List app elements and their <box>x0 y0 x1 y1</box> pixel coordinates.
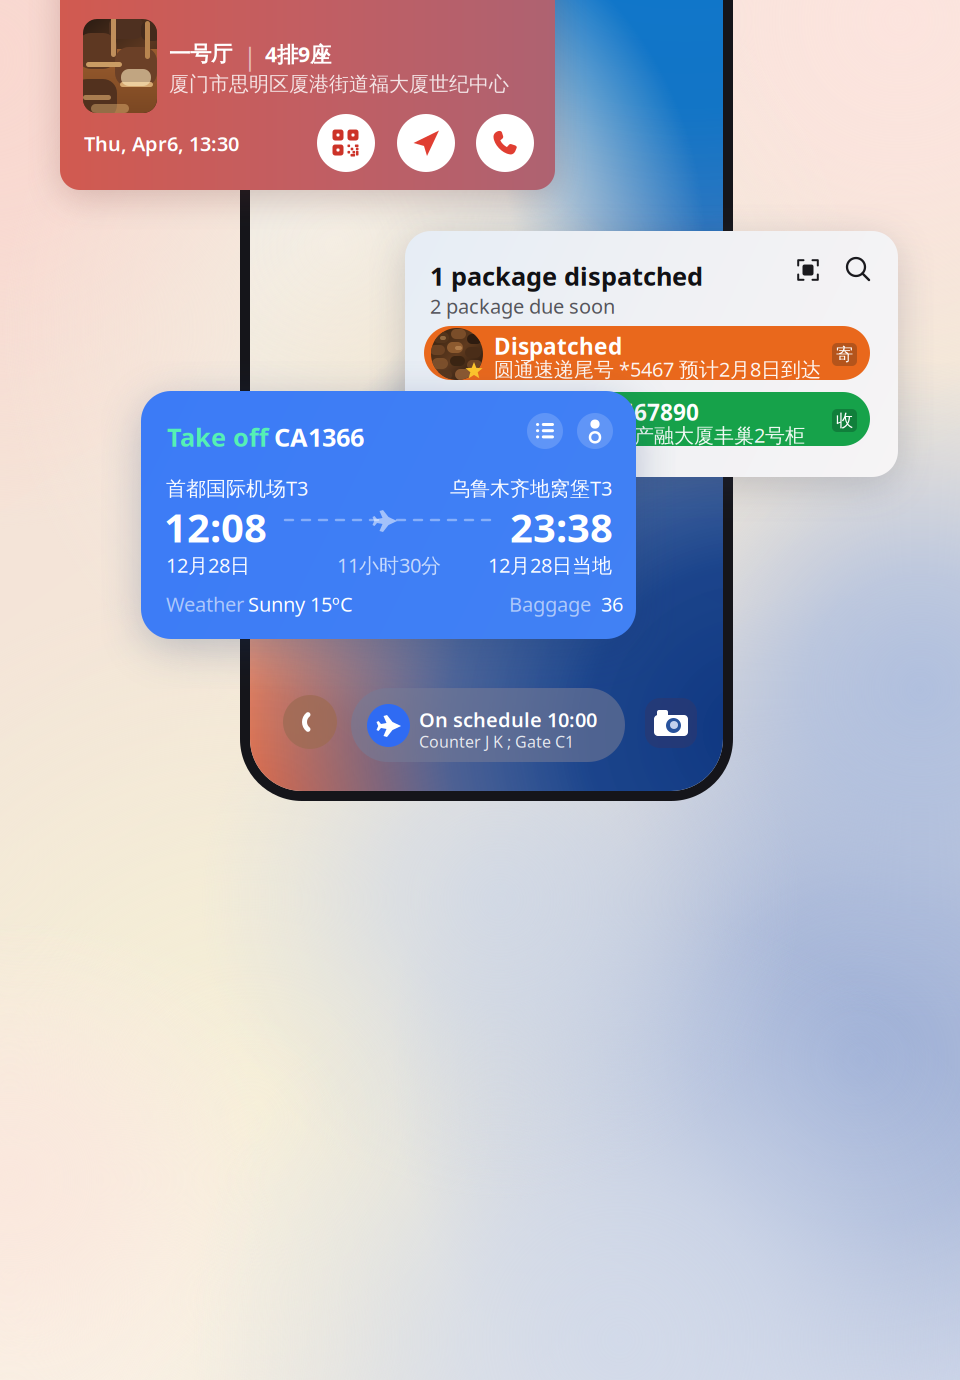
staticText: 12:08 <box>164 500 267 553</box>
staticText: 12月28日当地 <box>488 552 612 578</box>
staticText: 12月28日 <box>166 552 250 578</box>
button[interactable]: Search <box>847 258 870 281</box>
button[interactable]: On schedule 10:00 <box>351 688 625 762</box>
staticText: 寄 <box>836 344 853 365</box>
staticText: 厦门市思明区地产融大厦丰巢2号柜 <box>494 422 805 448</box>
button[interactable]: Camera <box>645 698 697 748</box>
button[interactable]: Dispatched <box>424 326 870 380</box>
staticText: Counter J K ; Gate C1 <box>419 731 574 752</box>
staticText: 1 package dispatched <box>430 259 703 293</box>
staticText: 2 package due soon <box>430 293 615 319</box>
staticText: 23:38 <box>510 500 613 553</box>
staticText: | <box>243 39 257 73</box>
staticText: CA1366 <box>274 420 364 454</box>
staticText: Baggage <box>509 591 591 617</box>
staticText: Sunny 15ºC <box>248 591 353 617</box>
staticText: 一号厅 <box>169 41 232 67</box>
staticText: Weather <box>166 591 244 617</box>
staticText: 36 <box>601 591 623 617</box>
button[interactable]: Ticket QR code <box>317 114 375 172</box>
staticText: Take off <box>167 420 269 454</box>
staticText: 厦门市思明区厦港街道福大厦世纪中心 <box>169 72 509 96</box>
staticText: 11小时30分 <box>337 552 441 578</box>
staticText: 快递柜 1234567890 <box>494 397 699 427</box>
button[interactable]: 快递柜 1234567890 <box>424 392 870 446</box>
staticText: 4排9座 <box>265 40 331 68</box>
button[interactable]: Call cinema <box>476 114 534 172</box>
button[interactable]: Scan code <box>797 259 819 281</box>
staticText: 圆通速递尾号 *5467 <box>494 356 674 382</box>
button[interactable]: More options <box>577 413 613 449</box>
staticText: On schedule 10:00 <box>419 706 597 733</box>
staticText: 首都国际机场T3 <box>166 475 308 501</box>
staticText: 预计2月8日到达 <box>679 356 821 382</box>
staticText: Thu, Apr6, 13:30 <box>84 130 239 157</box>
staticText: Dispatched <box>494 331 622 361</box>
button[interactable]: Phone <box>283 695 337 749</box>
staticText: 收 <box>836 410 853 431</box>
button[interactable]: Itinerary <box>527 413 563 449</box>
staticText: 乌鲁木齐地窝堡T3 <box>450 475 612 501</box>
button[interactable]: Directions <box>397 114 455 172</box>
